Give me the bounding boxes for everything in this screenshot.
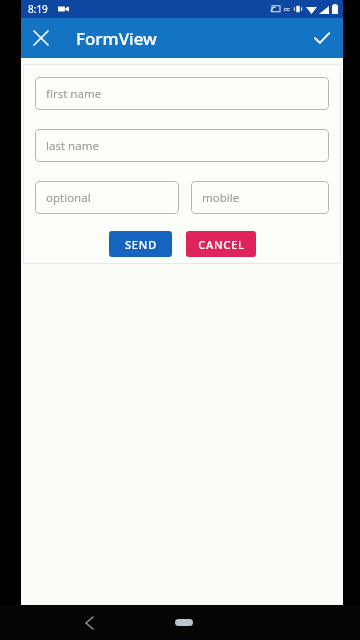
button[interactable]: mobile — [191, 181, 329, 214]
button[interactable]: Confirm — [309, 25, 335, 51]
button[interactable]: optional — [35, 181, 179, 214]
staticText: CANCEL — [198, 237, 245, 252]
staticText: mobile — [202, 190, 240, 206]
button[interactable]: Home — [175, 619, 193, 626]
staticText: first name — [46, 86, 102, 102]
button[interactable]: CANCEL — [186, 231, 256, 257]
button[interactable]: Back — [76, 610, 102, 636]
staticText: last name — [46, 138, 99, 154]
button[interactable]: Close — [29, 26, 53, 50]
staticText: optional — [46, 190, 91, 206]
staticText: 8:19 — [28, 2, 48, 16]
button[interactable]: SEND — [109, 231, 172, 257]
staticText: FormView — [76, 27, 157, 50]
staticText: SEND — [125, 237, 157, 252]
button[interactable]: last name — [35, 129, 329, 162]
button[interactable]: first name — [35, 77, 329, 110]
staticText: cc — [284, 5, 290, 13]
